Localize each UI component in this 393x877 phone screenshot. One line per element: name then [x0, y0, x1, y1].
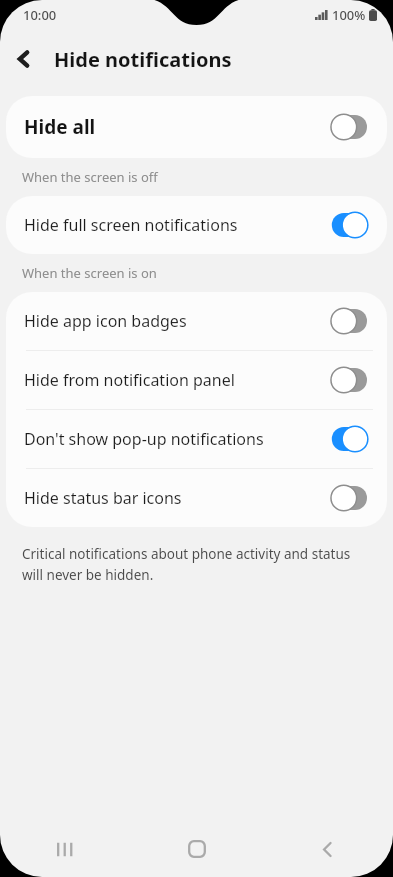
staticText: Don't show pop-up notifications — [24, 428, 323, 450]
staticText: 100% — [332, 6, 366, 24]
staticText: 10:00 — [23, 6, 57, 24]
button[interactable]: Hide from notification panel — [6, 351, 387, 409]
staticText: Hide all — [24, 114, 323, 140]
button[interactable]: Recents — [0, 821, 131, 877]
staticText: When the screen is on — [22, 264, 157, 282]
button[interactable]: Hide status bar icons — [6, 469, 387, 527]
button[interactable]: Hide app icon badges — [6, 292, 387, 350]
staticText: Hide app icon badges — [24, 310, 323, 332]
button[interactable]: Back — [0, 35, 48, 83]
button[interactable]: Home — [131, 821, 262, 877]
staticText: Hide full screen notifications — [24, 214, 323, 236]
staticText: When the screen is off — [22, 168, 158, 186]
staticText: Hide notifications — [54, 46, 232, 73]
button[interactable]: Hide all — [6, 96, 387, 158]
staticText: Hide from notification panel — [24, 369, 323, 391]
button[interactable]: Back — [262, 821, 393, 877]
staticText: Critical notifications about phone activ… — [22, 545, 351, 584]
staticText: Hide status bar icons — [24, 487, 323, 509]
button[interactable]: Hide full screen notifications — [6, 196, 387, 254]
button[interactable]: Don't show pop-up notifications — [6, 410, 387, 468]
